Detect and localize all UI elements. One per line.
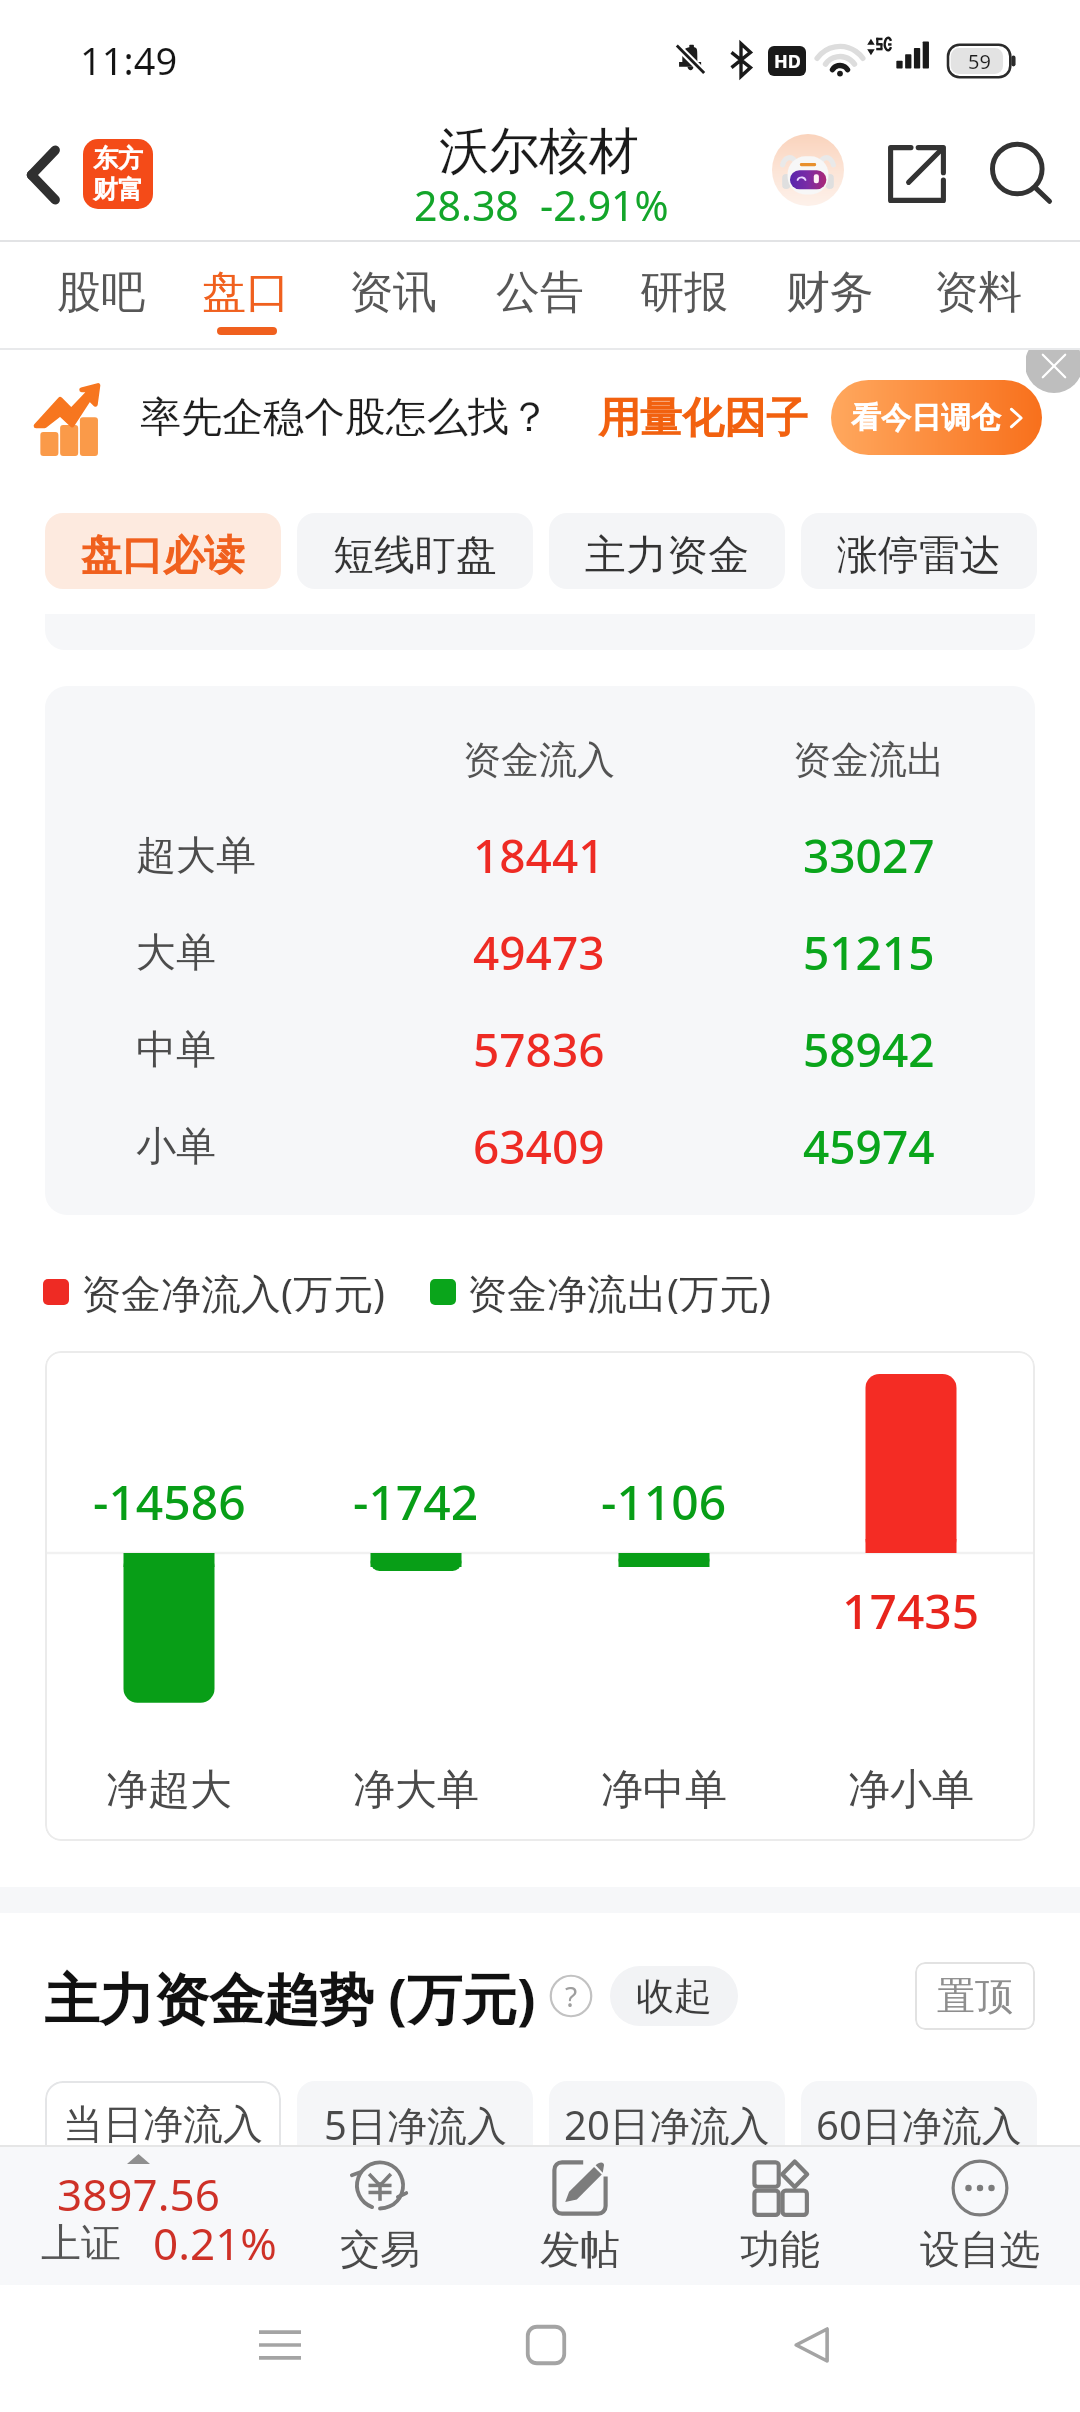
staticText: 资金流出 bbox=[793, 736, 945, 784]
button[interactable]: Search bbox=[976, 141, 1066, 207]
staticText: 11:49 bbox=[80, 34, 178, 86]
button[interactable]: 发帖 bbox=[480, 2145, 680, 2285]
staticText: 63409 bbox=[473, 1115, 605, 1178]
staticText: 资料 bbox=[934, 265, 1022, 320]
button[interactable]: 3897.56 bbox=[0, 2145, 280, 2285]
staticText: HD bbox=[774, 49, 801, 74]
staticText: 18441 bbox=[473, 824, 605, 887]
button[interactable]: Help bbox=[549, 1974, 593, 2018]
staticText: 涨停雷达 bbox=[837, 530, 1001, 582]
staticText: 51215 bbox=[803, 921, 935, 984]
button[interactable]: 20日净流入 bbox=[549, 2081, 785, 2167]
staticText: 沃尔核材 bbox=[439, 120, 639, 183]
button[interactable]: 短线盯盘 bbox=[297, 513, 533, 589]
button[interactable]: 设自选 bbox=[880, 2145, 1080, 2285]
staticText: 资金净流出(万元) bbox=[467, 1265, 771, 1320]
button[interactable]: AI assistant bbox=[772, 134, 844, 206]
button[interactable]: Share bbox=[872, 141, 962, 207]
staticText: 45974 bbox=[803, 1115, 935, 1178]
staticText: ? bbox=[565, 1977, 578, 2015]
staticText: 0.21% bbox=[153, 2213, 277, 2273]
staticText: 资金净流入(万元) bbox=[81, 1265, 385, 1320]
staticText: 收起 bbox=[636, 1972, 712, 2020]
button[interactable]: Recents bbox=[225, 2290, 335, 2400]
staticText: 东方 bbox=[93, 143, 143, 174]
button[interactable] bbox=[758, 242, 902, 350]
staticText: 公告 bbox=[496, 265, 584, 320]
staticText: 59 bbox=[968, 48, 991, 75]
staticText: -2.91% bbox=[540, 177, 669, 233]
staticText: 财富 bbox=[93, 174, 143, 205]
button[interactable] bbox=[612, 242, 756, 350]
button[interactable]: 看今日调仓 bbox=[831, 380, 1042, 455]
staticText: 主力资金 bbox=[585, 530, 749, 582]
button[interactable]: Back bbox=[757, 2290, 867, 2400]
staticText: 用量化因子 bbox=[598, 392, 808, 445]
staticText: 20日净流入 bbox=[564, 2097, 770, 2152]
button[interactable]: 率先企稳个股怎么找？ bbox=[0, 350, 1080, 500]
button[interactable]: 置顶 bbox=[915, 1962, 1035, 2030]
button[interactable]: 5日净流入 bbox=[297, 2081, 533, 2167]
staticText: 净中单 bbox=[601, 1764, 727, 1817]
staticText: 盘口必读 bbox=[81, 530, 245, 582]
staticText: 净超大 bbox=[106, 1764, 232, 1817]
staticText: 33027 bbox=[803, 824, 935, 887]
staticText: 交易 bbox=[340, 2224, 420, 2274]
staticText: 主力资金趋势 (万元) bbox=[44, 1960, 536, 2035]
button[interactable] bbox=[29, 242, 173, 350]
staticText: 5日净流入 bbox=[324, 2097, 507, 2152]
staticText: 小单 bbox=[136, 1121, 216, 1171]
staticText: 60日净流入 bbox=[816, 2097, 1022, 2152]
button[interactable]: 收起 bbox=[610, 1966, 738, 2026]
staticText: 功能 bbox=[740, 2224, 820, 2274]
staticText: 净小单 bbox=[848, 1764, 974, 1817]
button[interactable]: 主力资金 bbox=[549, 513, 785, 589]
button[interactable] bbox=[906, 242, 1050, 350]
staticText: 看今日调仓 bbox=[851, 399, 1001, 437]
staticText: 3897.56 bbox=[57, 2164, 220, 2224]
staticText: 发帖 bbox=[540, 2224, 620, 2274]
staticText: 49473 bbox=[473, 921, 605, 984]
staticText: 28.38 bbox=[414, 177, 519, 233]
staticText: 超大单 bbox=[136, 830, 256, 880]
button[interactable]: Back bbox=[3, 135, 83, 215]
staticText: 置顶 bbox=[937, 1972, 1013, 2020]
button[interactable]: 东方财富 bbox=[83, 139, 153, 209]
button[interactable]: 60日净流入 bbox=[801, 2081, 1037, 2167]
staticText: 盘口 bbox=[202, 265, 290, 320]
staticText: -1106 bbox=[601, 1469, 727, 1534]
button[interactable]: Close bbox=[1026, 350, 1080, 396]
staticText: 17435 bbox=[842, 1578, 980, 1643]
staticText: 净大单 bbox=[353, 1764, 479, 1817]
staticText: 57836 bbox=[473, 1018, 605, 1081]
staticText: 大单 bbox=[136, 927, 216, 977]
staticText: 中单 bbox=[136, 1024, 216, 1074]
button[interactable]: Home bbox=[491, 2290, 601, 2400]
button[interactable]: 功能 bbox=[680, 2145, 880, 2285]
button[interactable]: 交易 bbox=[280, 2145, 480, 2285]
staticText: 财务 bbox=[786, 265, 874, 320]
staticText: 当日净流入 bbox=[63, 2099, 263, 2149]
button[interactable] bbox=[468, 242, 612, 350]
button[interactable]: 盘口必读 bbox=[45, 513, 281, 589]
button[interactable]: 当日净流入 bbox=[45, 2081, 281, 2167]
button[interactable]: 涨停雷达 bbox=[801, 513, 1037, 589]
staticText: 58942 bbox=[803, 1018, 935, 1081]
staticText: 资金流入 bbox=[463, 736, 615, 784]
staticText: 率先企稳个股怎么找？ bbox=[140, 392, 550, 444]
staticText: -1742 bbox=[353, 1469, 479, 1534]
staticText: 上证 bbox=[41, 2218, 121, 2268]
button[interactable] bbox=[174, 242, 318, 350]
button[interactable] bbox=[321, 242, 465, 350]
staticText: -14586 bbox=[93, 1469, 246, 1534]
staticText: 股吧 bbox=[57, 265, 145, 320]
staticText: 设自选 bbox=[920, 2224, 1040, 2274]
staticText: 资讯 bbox=[349, 265, 437, 320]
staticText: 短线盯盘 bbox=[333, 530, 497, 582]
staticText: 研报 bbox=[640, 265, 728, 320]
